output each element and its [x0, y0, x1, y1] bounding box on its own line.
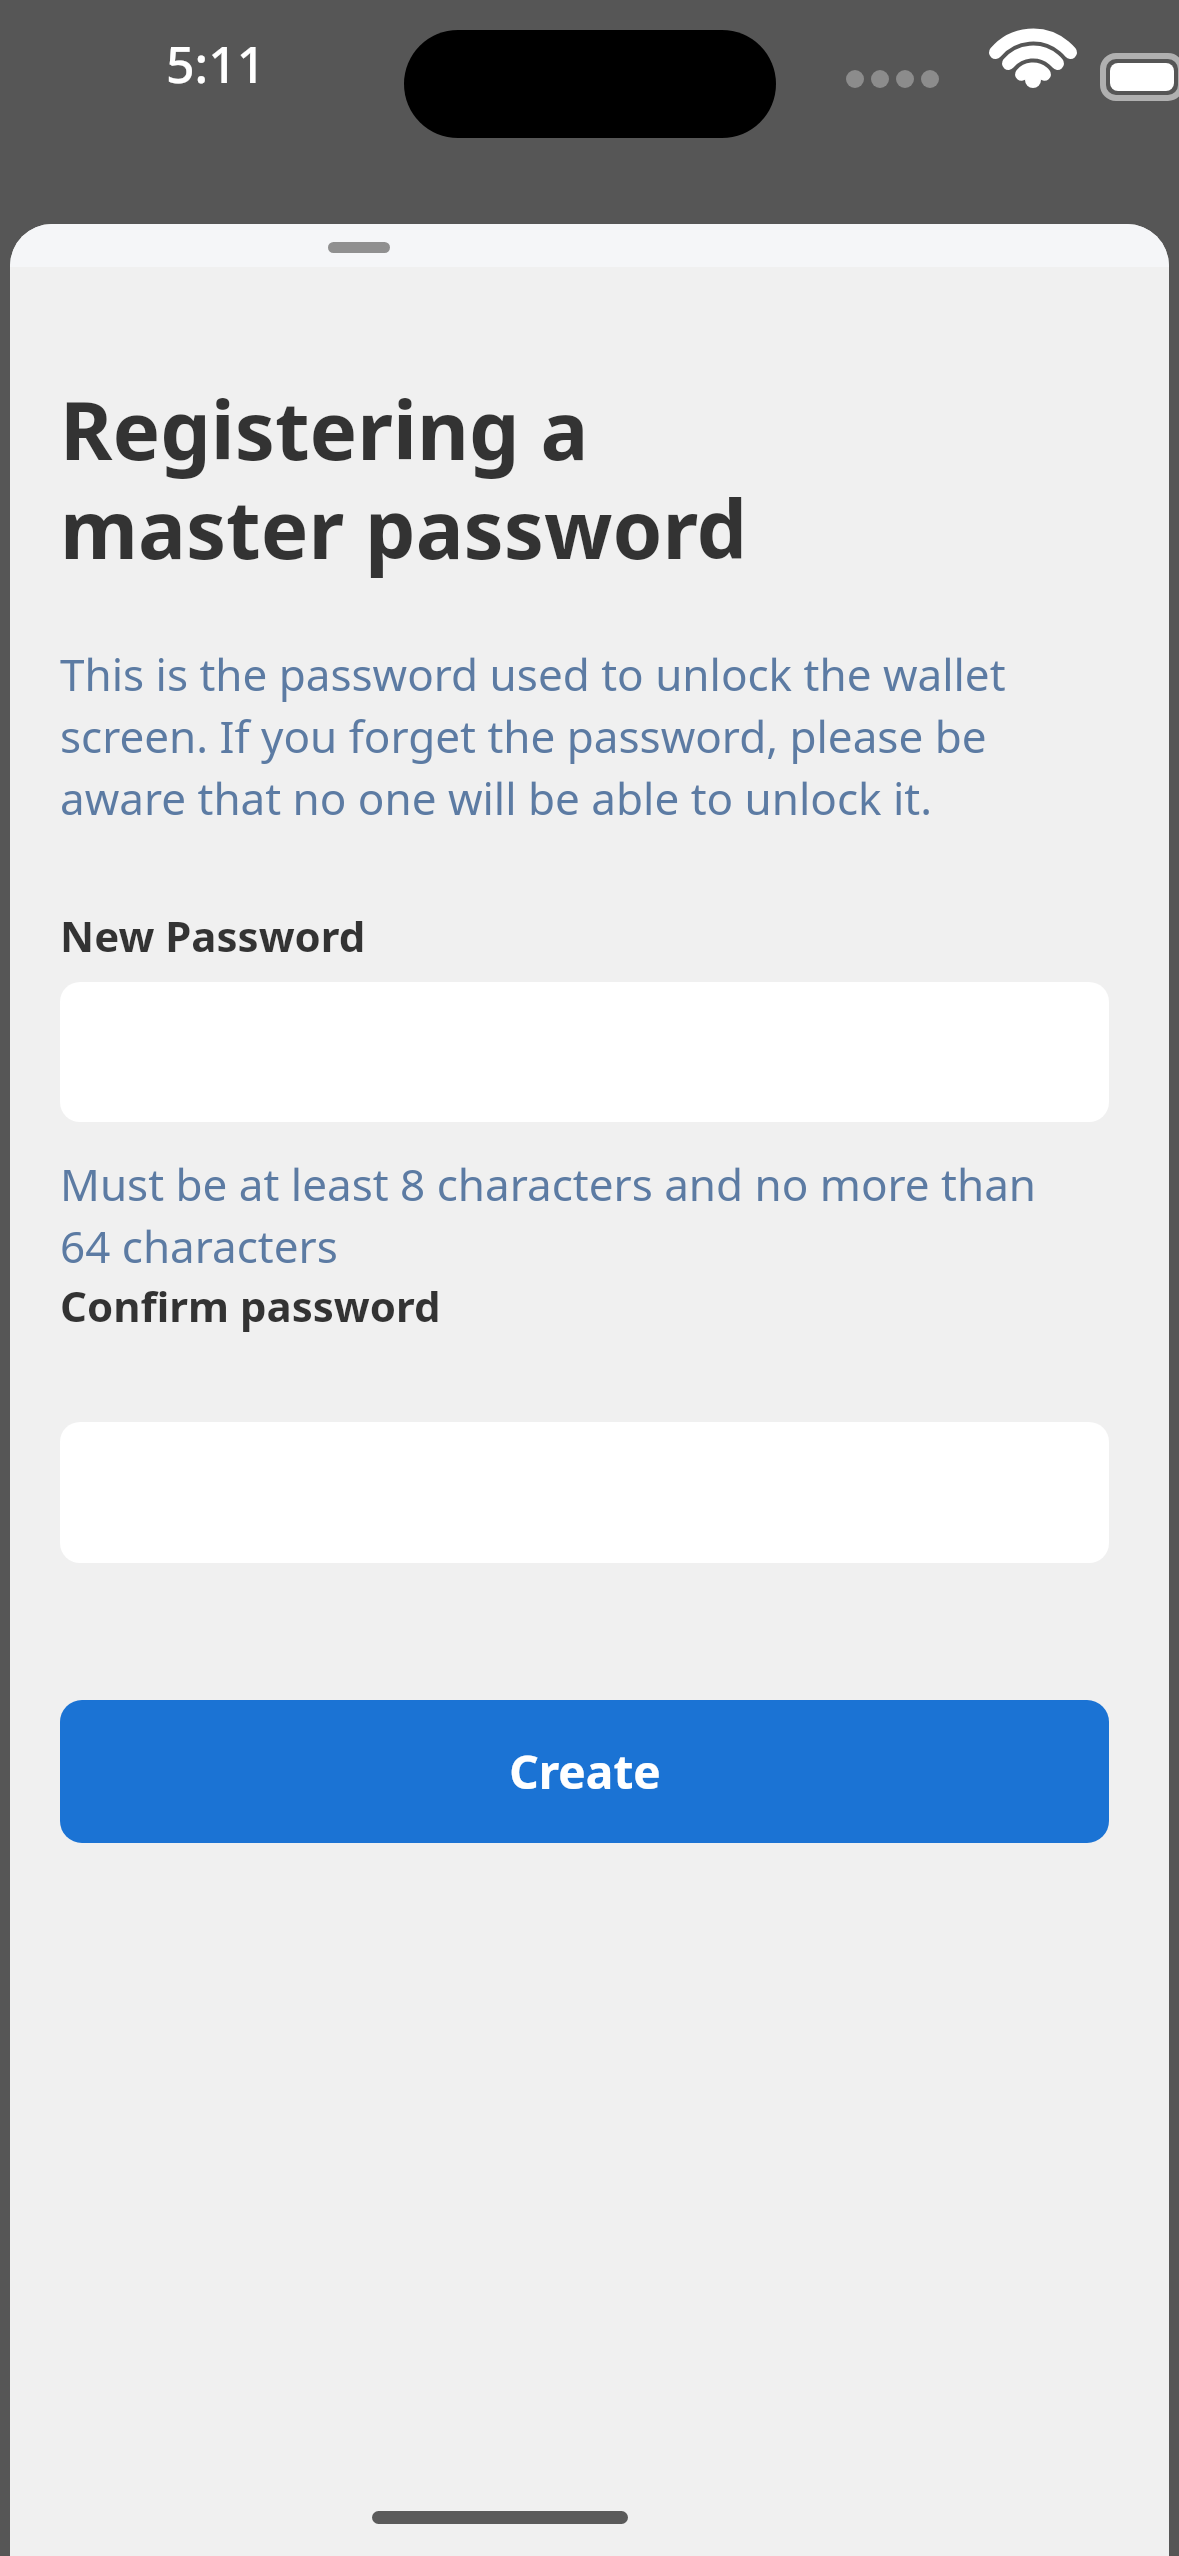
- staticText: New Password: [60, 907, 366, 964]
- staticText: Must be at least 8 characters and no mor…: [60, 1154, 1080, 1276]
- staticText: Registering a master password: [60, 374, 748, 583]
- button[interactable]: Create: [60, 1700, 1109, 1843]
- staticText: Create: [509, 1740, 661, 1803]
- staticText: 5:11: [166, 30, 266, 98]
- staticText: Confirm password: [60, 1277, 441, 1334]
- staticText: This is the password used to unlock the …: [60, 644, 1120, 828]
